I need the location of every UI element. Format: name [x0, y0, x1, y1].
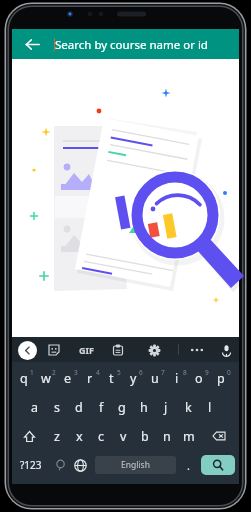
staticText: u	[151, 370, 159, 387]
button[interactable]: Clipboard	[108, 340, 128, 360]
button[interactable]: Voice input	[216, 340, 236, 360]
button[interactable]: More options	[187, 340, 207, 360]
staticText: 9	[205, 368, 209, 377]
button[interactable]: u	[144, 365, 166, 391]
button[interactable]: b	[134, 423, 156, 449]
staticText: n	[163, 428, 171, 445]
button[interactable]: ?123	[14, 452, 48, 478]
button[interactable]: Stickers	[44, 340, 64, 360]
button[interactable]: Emoji	[50, 452, 70, 478]
staticText: GIF	[79, 344, 94, 356]
staticText: x	[76, 428, 83, 445]
button[interactable]: z	[46, 423, 68, 449]
button[interactable]: l	[199, 394, 221, 420]
staticText: w	[41, 370, 51, 387]
button[interactable]: s	[46, 394, 68, 420]
staticText: 0	[227, 368, 231, 377]
button[interactable]: j	[155, 394, 177, 420]
button[interactable]: Backspace	[202, 423, 235, 449]
staticText: English	[121, 459, 150, 471]
button[interactable]: f	[90, 394, 112, 420]
staticText: h	[140, 399, 148, 416]
staticText: i	[175, 370, 179, 387]
button[interactable]: h	[133, 394, 155, 420]
button[interactable]: x	[68, 423, 90, 449]
button[interactable]: e	[57, 365, 79, 391]
staticText: z	[54, 428, 60, 445]
staticText: m	[183, 428, 195, 445]
button[interactable]: d	[68, 394, 90, 420]
staticText: d	[75, 399, 83, 416]
button[interactable]: c	[90, 423, 112, 449]
staticText: p	[217, 370, 225, 387]
staticText: j	[164, 399, 168, 416]
button[interactable]: k	[177, 394, 199, 420]
staticText: e	[64, 370, 72, 387]
staticText: l	[208, 399, 212, 416]
staticText: a	[31, 399, 39, 416]
button[interactable]: Shift	[13, 423, 46, 449]
button[interactable]: English	[95, 456, 176, 474]
staticText: g	[118, 399, 126, 416]
button[interactable]: y	[122, 365, 144, 391]
button[interactable]: w	[35, 365, 57, 391]
staticText: k	[185, 399, 192, 416]
button[interactable]: p	[210, 365, 232, 391]
button[interactable]: Back	[17, 340, 37, 360]
staticText: s	[54, 399, 60, 416]
button[interactable]: t	[100, 365, 122, 391]
staticText: 3	[74, 368, 78, 377]
button[interactable]: Search	[201, 455, 235, 475]
staticText: ?123	[20, 458, 42, 472]
button[interactable]: Back	[17, 29, 47, 59]
staticText: f	[99, 399, 104, 416]
staticText: 6	[139, 368, 143, 377]
button[interactable]: q	[13, 365, 35, 391]
staticText: Search by course name or id	[55, 37, 208, 53]
staticText: q	[20, 370, 28, 387]
button[interactable]: r	[79, 365, 101, 391]
staticText: 5	[117, 368, 121, 377]
button[interactable]: v	[112, 423, 134, 449]
staticText: 7	[161, 368, 165, 377]
button[interactable]: n	[156, 423, 178, 449]
staticText: o	[195, 370, 203, 387]
button[interactable]: Change language	[69, 452, 91, 478]
staticText: 1	[30, 368, 34, 377]
staticText: b	[141, 428, 149, 445]
staticText: 4	[96, 368, 100, 377]
button[interactable]: GIF	[76, 340, 96, 360]
staticText: c	[98, 428, 105, 445]
staticText: .	[187, 458, 190, 473]
button[interactable]: o	[188, 365, 210, 391]
button[interactable]: Settings	[144, 340, 164, 360]
button[interactable]: a	[24, 394, 46, 420]
staticText: 2	[52, 368, 56, 377]
staticText: 8	[183, 368, 187, 377]
staticText: t	[109, 370, 114, 387]
staticText: r	[87, 370, 93, 387]
button[interactable]: i	[166, 365, 188, 391]
button[interactable]: g	[111, 394, 133, 420]
button[interactable]: m	[178, 423, 200, 449]
staticText: y	[130, 370, 137, 387]
staticText: v	[120, 428, 127, 445]
button[interactable]: .	[179, 452, 197, 478]
